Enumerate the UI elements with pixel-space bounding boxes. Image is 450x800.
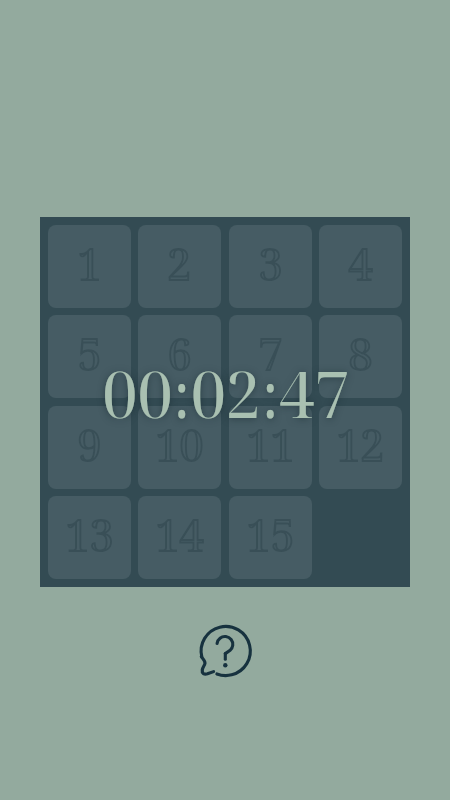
staticText: 7 xyxy=(258,324,283,383)
button[interactable]: 15 xyxy=(229,496,312,579)
staticText: 15 xyxy=(246,505,295,564)
staticText: 1 xyxy=(77,234,102,293)
button[interactable]: 9 xyxy=(48,406,131,489)
button[interactable]: 13 xyxy=(48,496,131,579)
staticText: 8 xyxy=(348,324,373,383)
staticText: 13 xyxy=(65,505,114,564)
staticText: 3 xyxy=(258,234,283,293)
button[interactable]: 7 xyxy=(229,315,312,398)
staticText: 11 xyxy=(246,415,295,474)
button[interactable]: 12 xyxy=(319,406,402,489)
staticText: 9 xyxy=(77,415,102,474)
button[interactable]: 11 xyxy=(229,406,312,489)
button[interactable]: 6 xyxy=(138,315,221,398)
staticText: 12 xyxy=(336,415,385,474)
staticText: 5 xyxy=(77,324,102,383)
staticText: 2 xyxy=(167,234,192,293)
staticText: 4 xyxy=(348,234,373,293)
staticText: 14 xyxy=(155,505,204,564)
button[interactable]: Help xyxy=(193,618,259,684)
staticText: 00:02:47 xyxy=(102,351,350,437)
staticText: 6 xyxy=(167,324,192,383)
button[interactable]: 5 xyxy=(48,315,131,398)
button[interactable]: 8 xyxy=(319,315,402,398)
staticText: 10 xyxy=(155,415,204,474)
button[interactable]: 10 xyxy=(138,406,221,489)
button[interactable]: 14 xyxy=(138,496,221,579)
